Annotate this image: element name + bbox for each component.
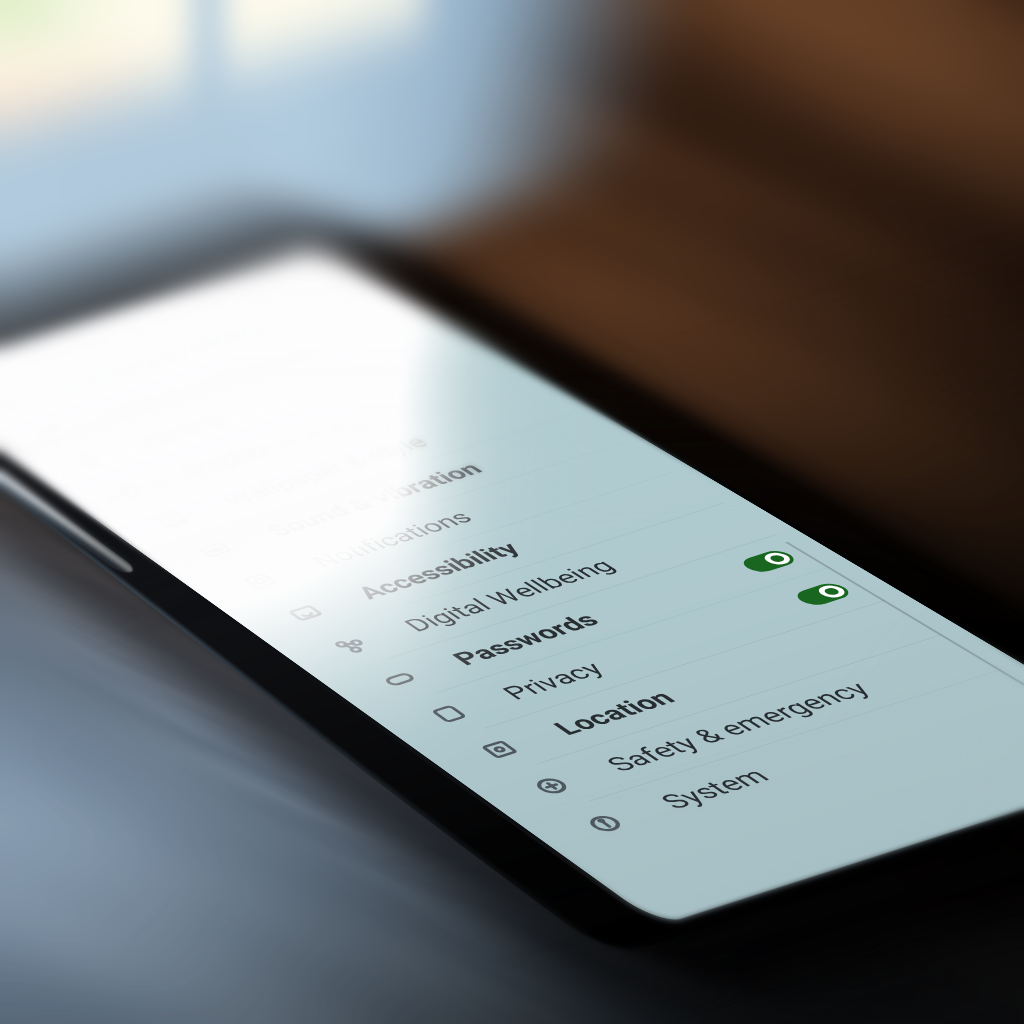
button[interactable]: Settings — [0, 0, 1024, 1024]
